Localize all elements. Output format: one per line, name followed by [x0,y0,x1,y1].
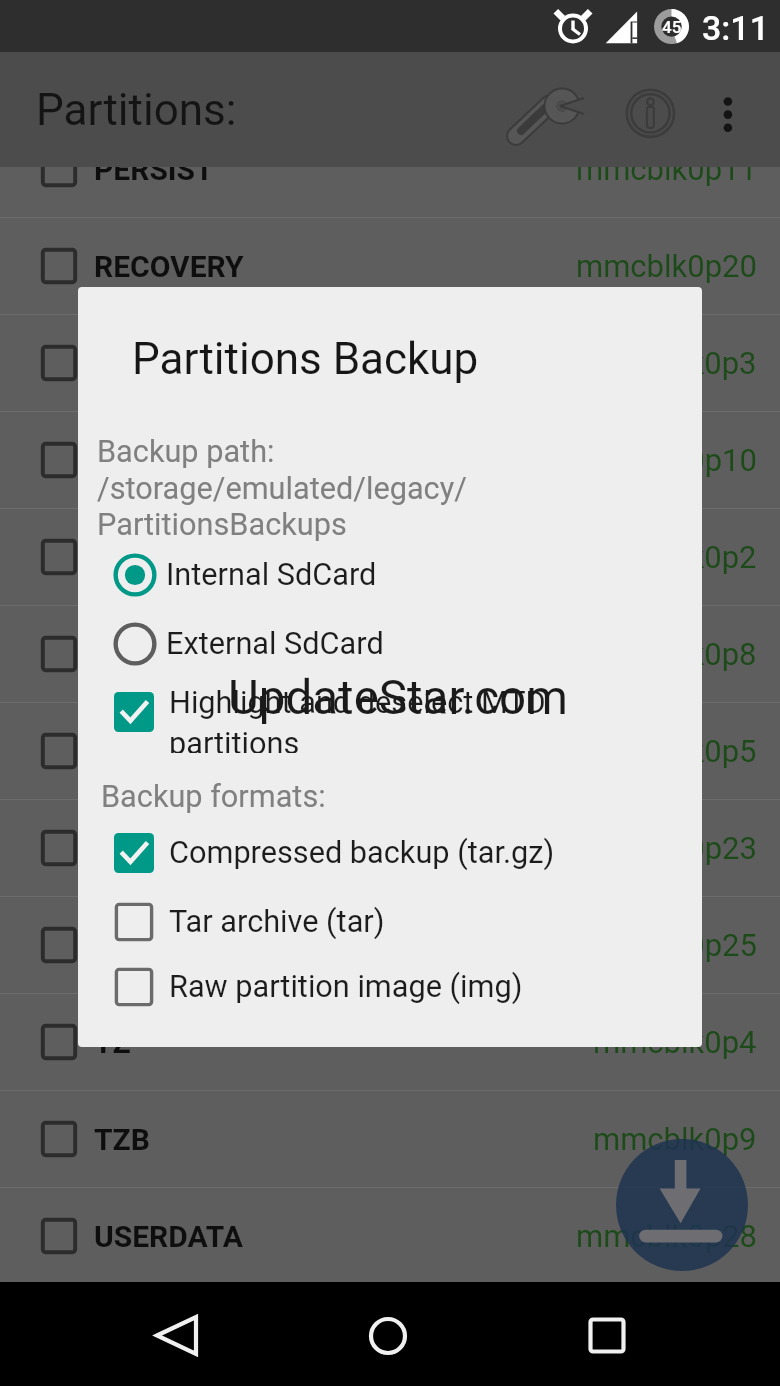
staticText: mmcblk0p3 [593,345,757,381]
button[interactable]: Back [140,1301,212,1373]
staticText: USERDATA [94,1219,243,1254]
button[interactable]: SBL1 [0,412,780,508]
button[interactable]: RPM [0,315,780,411]
staticText: mmcblk0p11 [576,151,757,187]
staticText: Highlight and deselect MTD partitions [169,685,546,753]
staticText: TOMBSTONES [94,928,293,963]
staticText: Partitions Backup [132,333,479,385]
button[interactable]: Backup [616,1139,748,1271]
staticText: Internal SdCard [166,557,377,593]
button[interactable]: Internal SdCard [78,541,702,609]
staticText: mmcblk0p28 [576,1218,757,1254]
staticText: 45 [662,17,682,37]
button[interactable]: SYSTEM [0,800,780,896]
staticText: RECOVERY [94,249,244,284]
button[interactable]: TOMBSTONES [0,897,780,993]
button[interactable]: USERDATA [0,1188,780,1284]
staticText: Partitions: [36,84,237,136]
staticText: SEC [94,637,149,672]
button[interactable]: RECOVERY [0,218,780,314]
button[interactable]: Info [614,77,688,151]
staticText: mmcblk0p4 [593,1024,757,1060]
button[interactable]: TZ [0,994,780,1090]
staticText: Backup formats: [101,779,326,815]
button[interactable]: Highlight and deselect MTD partitions [78,678,702,746]
staticText: mmcblk0p8 [593,636,757,672]
button[interactable]: Recent apps [571,1299,643,1371]
staticText: mmcblk0p9 [593,1121,757,1157]
staticText: SBL1 [94,443,166,478]
button[interactable]: Tools [498,67,592,161]
button[interactable]: Tar archive (tar) [78,888,702,956]
button[interactable]: PERSIST [0,121,780,217]
staticText: SYSTEM [94,831,211,866]
button[interactable]: Compressed backup (tar.gz) [78,819,702,887]
staticText: UpdateStar.com [228,670,568,726]
button[interactable]: SSD [0,703,780,799]
staticText: mmcblk0p20 [576,248,757,284]
staticText: TZB [94,1122,150,1157]
staticText: Tar archive (tar) [169,904,385,940]
button[interactable]: Home [352,1300,424,1372]
staticText: 3:11 [702,8,769,48]
button[interactable]: TZB [0,1091,780,1187]
staticText: Backup path: /storage/emulated/legacy/ P… [97,434,467,542]
staticText: mmcblk0p2 [593,539,757,575]
staticText: TZ [94,1025,131,1060]
button[interactable]: External SdCard [78,610,702,678]
staticText: Raw partition image (img) [169,969,523,1005]
staticText: mmcblk0p25 [576,927,757,963]
button[interactable]: SEC [0,606,780,702]
staticText: PERSIST [94,152,214,187]
staticText: External SdCard [166,626,384,662]
staticText: mmcblk0p23 [576,830,757,866]
button[interactable]: SDI [0,509,780,605]
staticText: mmcblk0p5 [593,733,757,769]
staticText: mmcblk0p10 [576,442,757,478]
button[interactable]: Raw partition image (img) [78,953,702,1021]
staticText: SDI [94,540,141,575]
staticText: RPM [94,346,159,381]
staticText: Compressed backup (tar.gz) [169,835,555,871]
button[interactable]: More options [704,75,776,153]
